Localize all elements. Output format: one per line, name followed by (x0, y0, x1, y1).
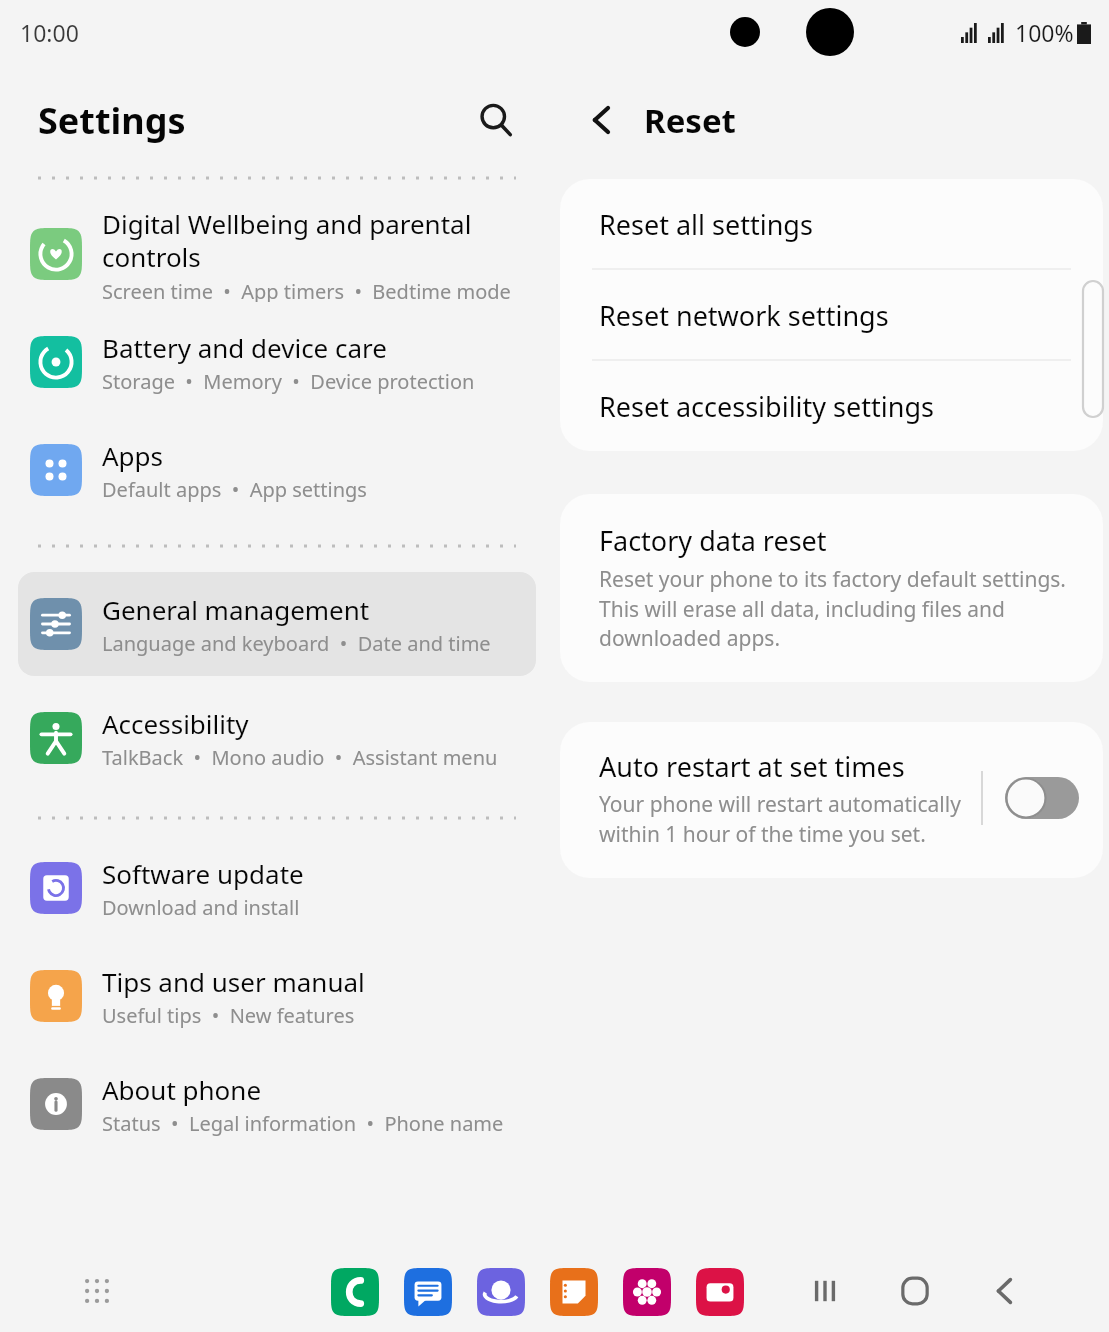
staticText: About phone (102, 1072, 262, 1107)
button[interactable]: Apps list (70, 1264, 124, 1318)
staticText: Reset network settings (599, 297, 889, 334)
button[interactable]: Accessibility (18, 700, 536, 776)
button[interactable]: Home (877, 1253, 953, 1329)
button[interactable]: General management (18, 572, 536, 676)
button[interactable]: Back (576, 94, 628, 146)
button[interactable]: Tips and user manual (18, 958, 536, 1034)
button[interactable]: Internet (464, 1255, 537, 1328)
staticText: Screen time • App timers • Bedtime mode (102, 278, 511, 302)
staticText: General management (102, 592, 370, 627)
button[interactable]: Digital Wellbeing and parental controls (18, 206, 536, 302)
button[interactable]: Messages (391, 1255, 464, 1328)
staticText: 10:00 (20, 17, 79, 48)
staticText: 100% (1015, 17, 1074, 48)
staticText: Reset (644, 98, 736, 143)
staticText: Factory data reset (599, 522, 827, 559)
button[interactable]: Auto restart at set times (599, 748, 981, 848)
button[interactable]: Phone (318, 1255, 391, 1328)
button[interactable]: Back (967, 1253, 1043, 1329)
button[interactable]: Battery and device care (18, 324, 536, 400)
staticText: Your phone will restart automatically wi… (599, 790, 961, 848)
button[interactable]: Reset accessibility settings (560, 361, 1103, 451)
button[interactable]: Gallery (610, 1255, 683, 1328)
button[interactable]: Reset network settings (560, 270, 1103, 360)
staticText: Accessibility (102, 706, 249, 741)
button[interactable]: Recents (787, 1253, 863, 1329)
button[interactable]: Reset all settings (560, 179, 1103, 269)
staticText: Language and keyboard • Date and time (102, 630, 491, 657)
staticText: Download and install (102, 894, 300, 921)
staticText: Reset accessibility settings (599, 388, 934, 425)
button[interactable]: Factory data reset (560, 494, 1103, 682)
button[interactable]: About phone (18, 1066, 536, 1142)
button[interactable]: Auto restart toggle, off (1005, 777, 1079, 819)
staticText: Status • Legal information • Phone name (102, 1110, 504, 1137)
staticText: TalkBack • Mono audio • Assistant menu (102, 744, 498, 771)
staticText: Default apps • App settings (102, 476, 367, 503)
staticText: Battery and device care (102, 330, 387, 365)
button[interactable]: Software update (18, 850, 536, 926)
button[interactable]: Apps (18, 432, 536, 508)
staticText: Reset your phone to its factory default … (599, 565, 1066, 652)
staticText: Settings (38, 96, 186, 145)
staticText: Digital Wellbeing and parental controls (102, 206, 472, 275)
staticText: Apps (102, 438, 164, 473)
staticText: Storage • Memory • Device protection (102, 368, 475, 395)
button[interactable]: Camera (683, 1255, 756, 1328)
staticText: Useful tips • New features (102, 1002, 355, 1029)
staticText: Software update (102, 856, 304, 891)
staticText: Reset all settings (599, 206, 813, 243)
button[interactable]: Notes (537, 1255, 610, 1328)
button[interactable]: Search (468, 92, 524, 148)
staticText: Tips and user manual (102, 964, 365, 999)
staticText: Auto restart at set times (599, 748, 905, 785)
